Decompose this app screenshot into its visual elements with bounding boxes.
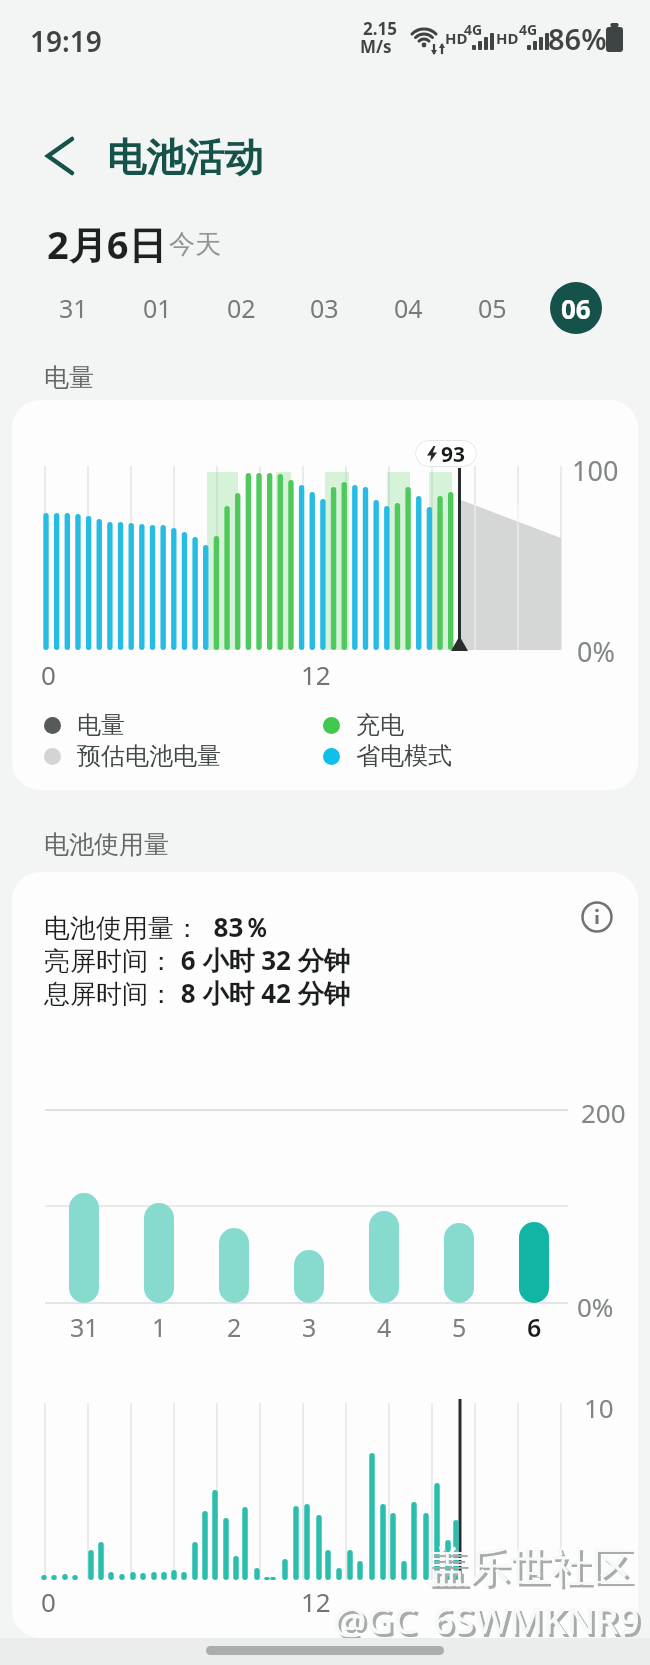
button[interactable]: 01 <box>131 282 183 334</box>
button[interactable] <box>580 900 614 934</box>
staticText: 1 <box>152 1310 167 1342</box>
staticText: 12 <box>301 657 331 692</box>
staticText: 电池活动 <box>107 133 263 182</box>
staticText: 今天 <box>169 228 221 261</box>
button[interactable]: 02 <box>215 282 267 334</box>
staticText: 100 <box>572 452 619 489</box>
staticText: 10 <box>584 1390 614 1425</box>
staticText: HD <box>496 28 519 48</box>
staticText: @GC_6SWMKNR9 <box>333 1594 640 1644</box>
staticText: 亮屏时间： 6 小时 32 分钟 <box>44 942 350 978</box>
staticText: 3 <box>302 1310 317 1342</box>
button[interactable]: 05 <box>466 282 518 334</box>
button[interactable]: 04 <box>382 282 434 334</box>
staticText: 0 <box>41 657 56 692</box>
staticText: 01 <box>143 291 172 325</box>
staticText: 0% <box>577 1289 614 1324</box>
staticText: 4G <box>519 20 538 39</box>
staticText: 息屏时间： 8 小时 42 分钟 <box>44 975 350 1011</box>
staticText: 04 <box>394 291 423 325</box>
staticText: 31 <box>70 1310 99 1342</box>
staticText: 05 <box>478 291 507 325</box>
staticText: 4 <box>377 1310 392 1342</box>
staticText: 0 <box>41 1584 56 1619</box>
staticText: 电池使用量： 83％ <box>44 909 270 945</box>
staticText: 电量 <box>44 362 94 393</box>
staticText: 盖乐世社区 <box>431 1545 636 1597</box>
button[interactable] <box>32 130 84 182</box>
staticText: @GC_6SWMKNR9 <box>336 1597 643 1647</box>
staticText: 86% <box>548 19 607 58</box>
staticText: 4G <box>464 20 483 39</box>
button[interactable]: 31 <box>47 282 99 334</box>
staticText: 2.15 <box>363 17 397 40</box>
staticText: 93 <box>441 440 466 467</box>
staticText: 电量 <box>77 710 125 740</box>
staticText: 06 <box>561 291 591 326</box>
staticText: HD <box>445 28 468 48</box>
staticText: 03 <box>310 291 339 325</box>
staticText: 200 <box>581 1095 626 1130</box>
button[interactable]: 03 <box>298 282 350 334</box>
staticText: 2月6日 <box>47 218 167 270</box>
staticText: 19:19 <box>30 22 102 60</box>
staticText: 31 <box>59 291 88 325</box>
staticText: 6 <box>527 1310 542 1342</box>
staticText: 02 <box>227 291 256 325</box>
staticText: 盖乐世社区 <box>428 1542 633 1594</box>
staticText: 2 <box>227 1310 242 1342</box>
staticText: 0% <box>577 633 615 670</box>
staticText: M/s <box>360 35 392 58</box>
staticText: 省电模式 <box>356 741 452 771</box>
staticText: 预估电池电量 <box>77 741 221 771</box>
staticText: 5 <box>452 1310 467 1342</box>
staticText: 电池使用量 <box>44 829 169 860</box>
staticText: 12 <box>301 1584 331 1619</box>
staticText: 充电 <box>356 710 404 740</box>
button[interactable]: 06 <box>550 282 602 334</box>
